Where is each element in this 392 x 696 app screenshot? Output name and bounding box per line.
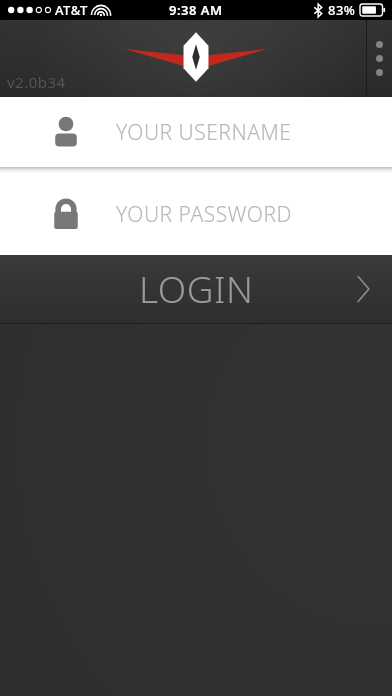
staticText: LOGIN	[139, 263, 254, 313]
staticText: 9:38 AM	[169, 1, 223, 19]
staticText: YOUR PASSWORD	[116, 200, 292, 229]
staticText: v2.0b34	[7, 72, 66, 92]
button[interactable]: More options	[366, 20, 392, 97]
button[interactable]: LOGIN	[0, 255, 392, 323]
staticText: YOUR USERNAME	[116, 118, 292, 147]
button[interactable]: YOUR USERNAME	[0, 97, 392, 167]
staticText: 83%	[328, 1, 356, 19]
button[interactable]: YOUR PASSWORD	[0, 173, 392, 255]
staticText: AT&T	[55, 1, 88, 19]
